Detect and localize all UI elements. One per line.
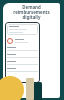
button[interactable] — [7, 24, 38, 35]
staticText: Demand reimbursements digitally — [3, 4, 60, 20]
